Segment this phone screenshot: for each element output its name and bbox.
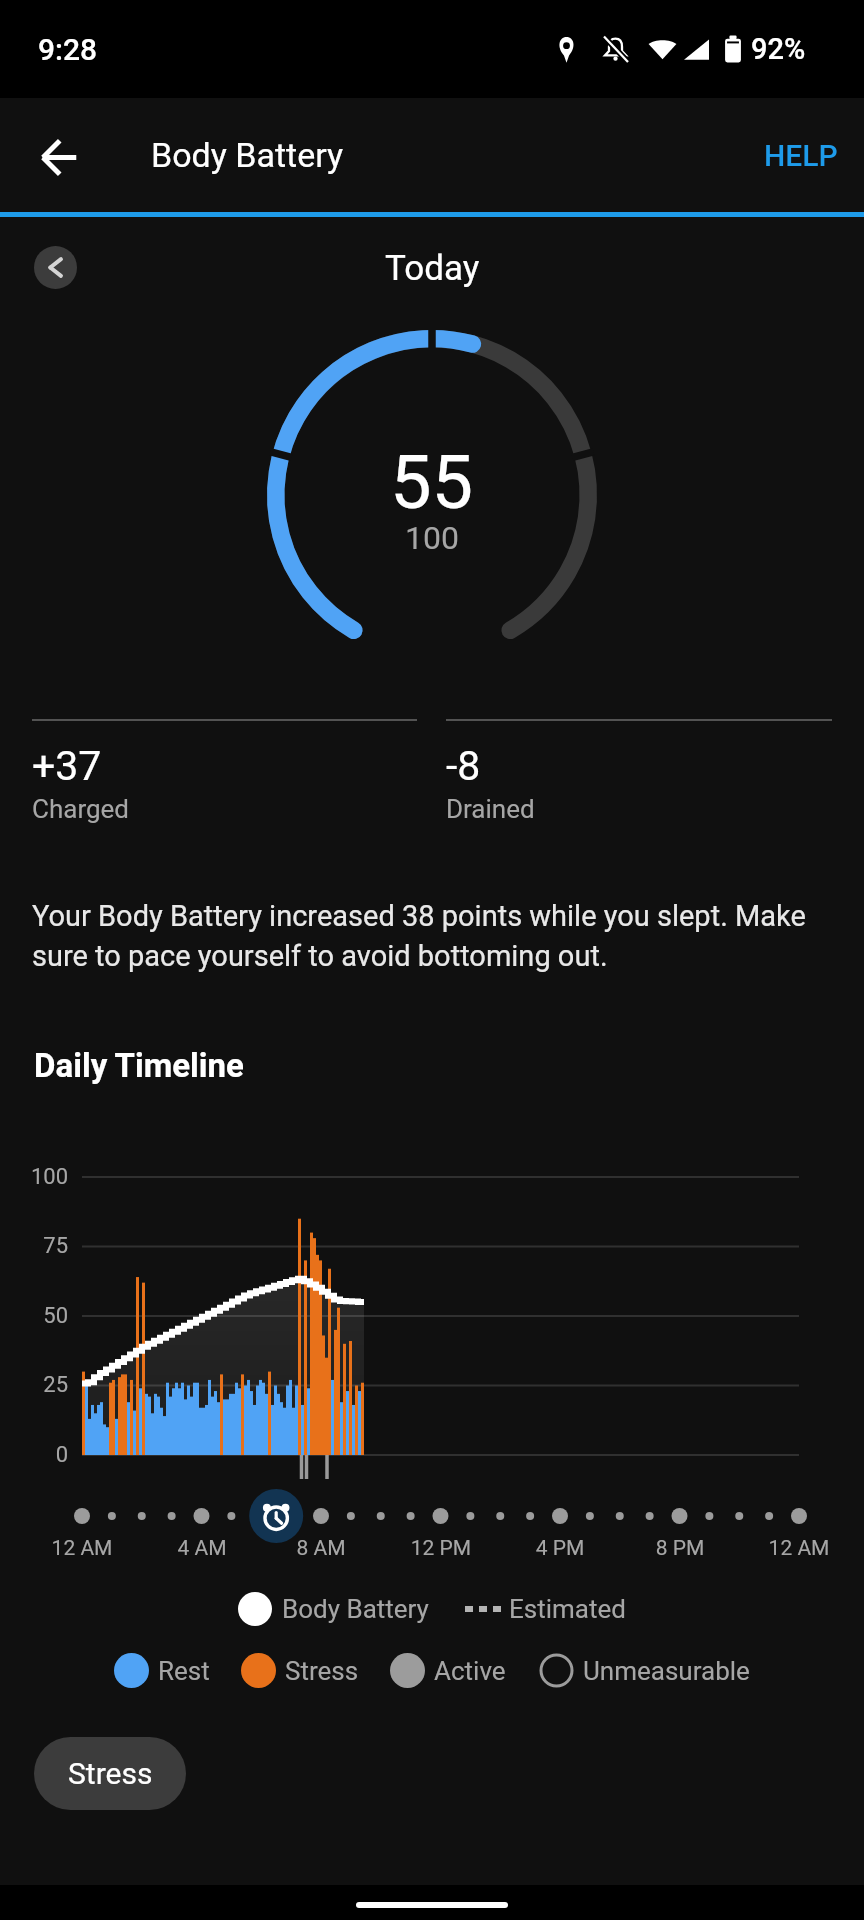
staticText: Your Body Battery increased 38 points wh… (32, 899, 842, 973)
staticText: 92% (751, 32, 806, 66)
staticText: Unmeasurable (583, 1656, 750, 1686)
staticText: Charged (32, 794, 130, 824)
staticText: 0 (0, 1442, 68, 1468)
staticText: 8 PM (610, 1536, 750, 1561)
button[interactable]: Previous day (34, 246, 77, 289)
staticText: Rest (158, 1656, 210, 1686)
staticText: 12 PM (371, 1536, 511, 1561)
staticText: 25 (0, 1372, 68, 1398)
staticText: Drained (446, 794, 535, 824)
staticText: -8 (446, 742, 481, 790)
staticText: Active (434, 1656, 506, 1686)
staticText: HELP (764, 138, 838, 173)
staticText: 12 AM (729, 1536, 864, 1561)
staticText: Estimated (509, 1594, 626, 1624)
staticText: Daily Timeline (34, 1046, 244, 1085)
staticText: 75 (0, 1233, 68, 1259)
staticText: 50 (0, 1303, 68, 1329)
staticText: 9:28 (38, 32, 98, 67)
staticText: 12 AM (12, 1536, 152, 1561)
button[interactable]: Stress (34, 1737, 186, 1810)
staticText: 4 AM (132, 1536, 272, 1561)
staticText: 55 (390, 439, 474, 526)
staticText: Body Battery (282, 1594, 429, 1624)
staticText: 8 AM (251, 1536, 391, 1561)
staticText: Stress (285, 1656, 359, 1686)
staticText: Today (385, 248, 480, 289)
staticText: Stress (68, 1756, 153, 1791)
staticText: 100 (0, 1164, 68, 1190)
staticText: 100 (405, 519, 459, 557)
staticText: 4 PM (490, 1536, 630, 1561)
staticText: Body Battery (151, 135, 344, 175)
button[interactable]: Back (24, 122, 94, 192)
staticText: +37 (32, 742, 102, 790)
button[interactable]: HELP (738, 116, 864, 195)
